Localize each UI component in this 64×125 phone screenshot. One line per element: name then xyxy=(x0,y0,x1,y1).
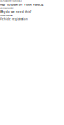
staticText: Why do we need this? xyxy=(0,10,31,14)
staticText: Why do we need this? xyxy=(0,7,14,9)
staticText: HELP US IDENTIFY YOUR VEHICLE xyxy=(0,3,43,6)
staticText: HELP US IDENTIFY YOUR VEHICLE xyxy=(0,0,22,2)
staticText: Vehicle registration xyxy=(0,17,28,21)
staticText: Vehicle registration xyxy=(0,15,13,16)
